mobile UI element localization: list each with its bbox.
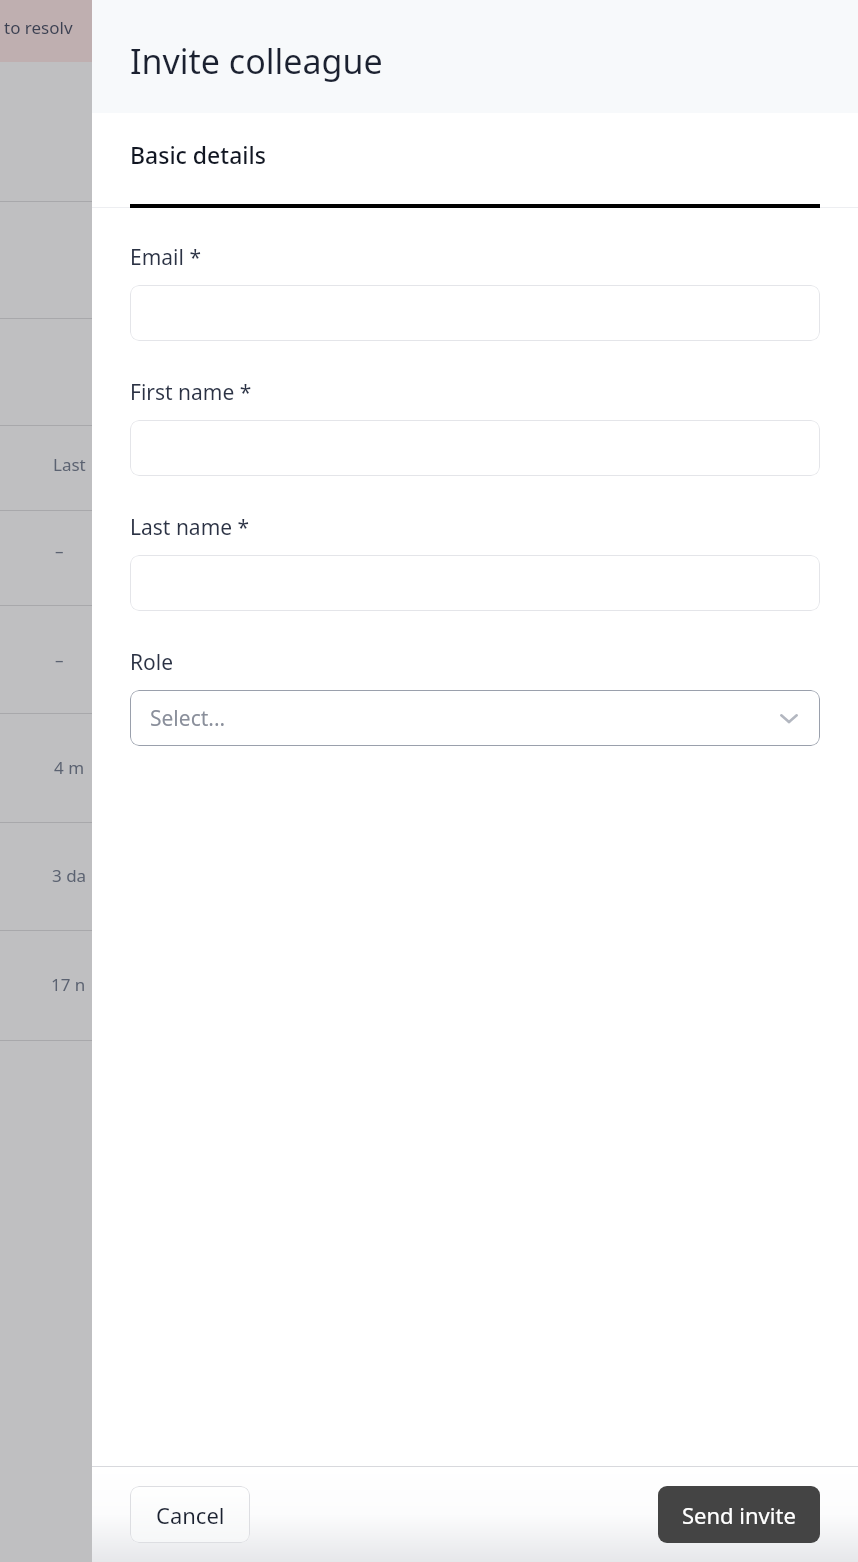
staticText: Basic details xyxy=(130,139,266,170)
staticText: – xyxy=(55,648,64,671)
staticText: Invite colleague xyxy=(130,38,383,84)
staticText: Last name * xyxy=(130,513,250,542)
staticText: 17 n xyxy=(51,973,86,996)
button[interactable]: Email * xyxy=(130,285,820,341)
staticText: Email * xyxy=(130,243,201,272)
staticText: Role xyxy=(130,648,174,677)
button[interactable]: Cancel xyxy=(130,1486,250,1543)
staticText: 4 m xyxy=(54,756,85,779)
staticText: Cancel xyxy=(156,1500,225,1530)
staticText: Send invite xyxy=(682,1500,796,1530)
staticText: Select... xyxy=(150,704,778,733)
staticText: First name * xyxy=(130,378,252,407)
button[interactable]: Send invite xyxy=(658,1486,820,1543)
button[interactable]: Basic details xyxy=(92,113,858,208)
staticText: 3 da xyxy=(52,864,87,887)
button[interactable]: Select... xyxy=(130,690,820,746)
staticText: to resolv xyxy=(4,16,73,39)
staticText: – xyxy=(55,539,64,562)
button[interactable]: First name * xyxy=(130,420,820,476)
button[interactable]: Last name * xyxy=(130,555,820,611)
staticText: Last xyxy=(53,453,86,476)
